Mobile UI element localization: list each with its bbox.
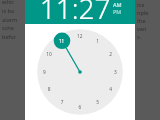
button[interactable] bbox=[111, 0, 125, 8]
button[interactable] bbox=[25, 0, 135, 24]
button[interactable] bbox=[37, 28, 123, 116]
button[interactable] bbox=[111, 8, 125, 16]
